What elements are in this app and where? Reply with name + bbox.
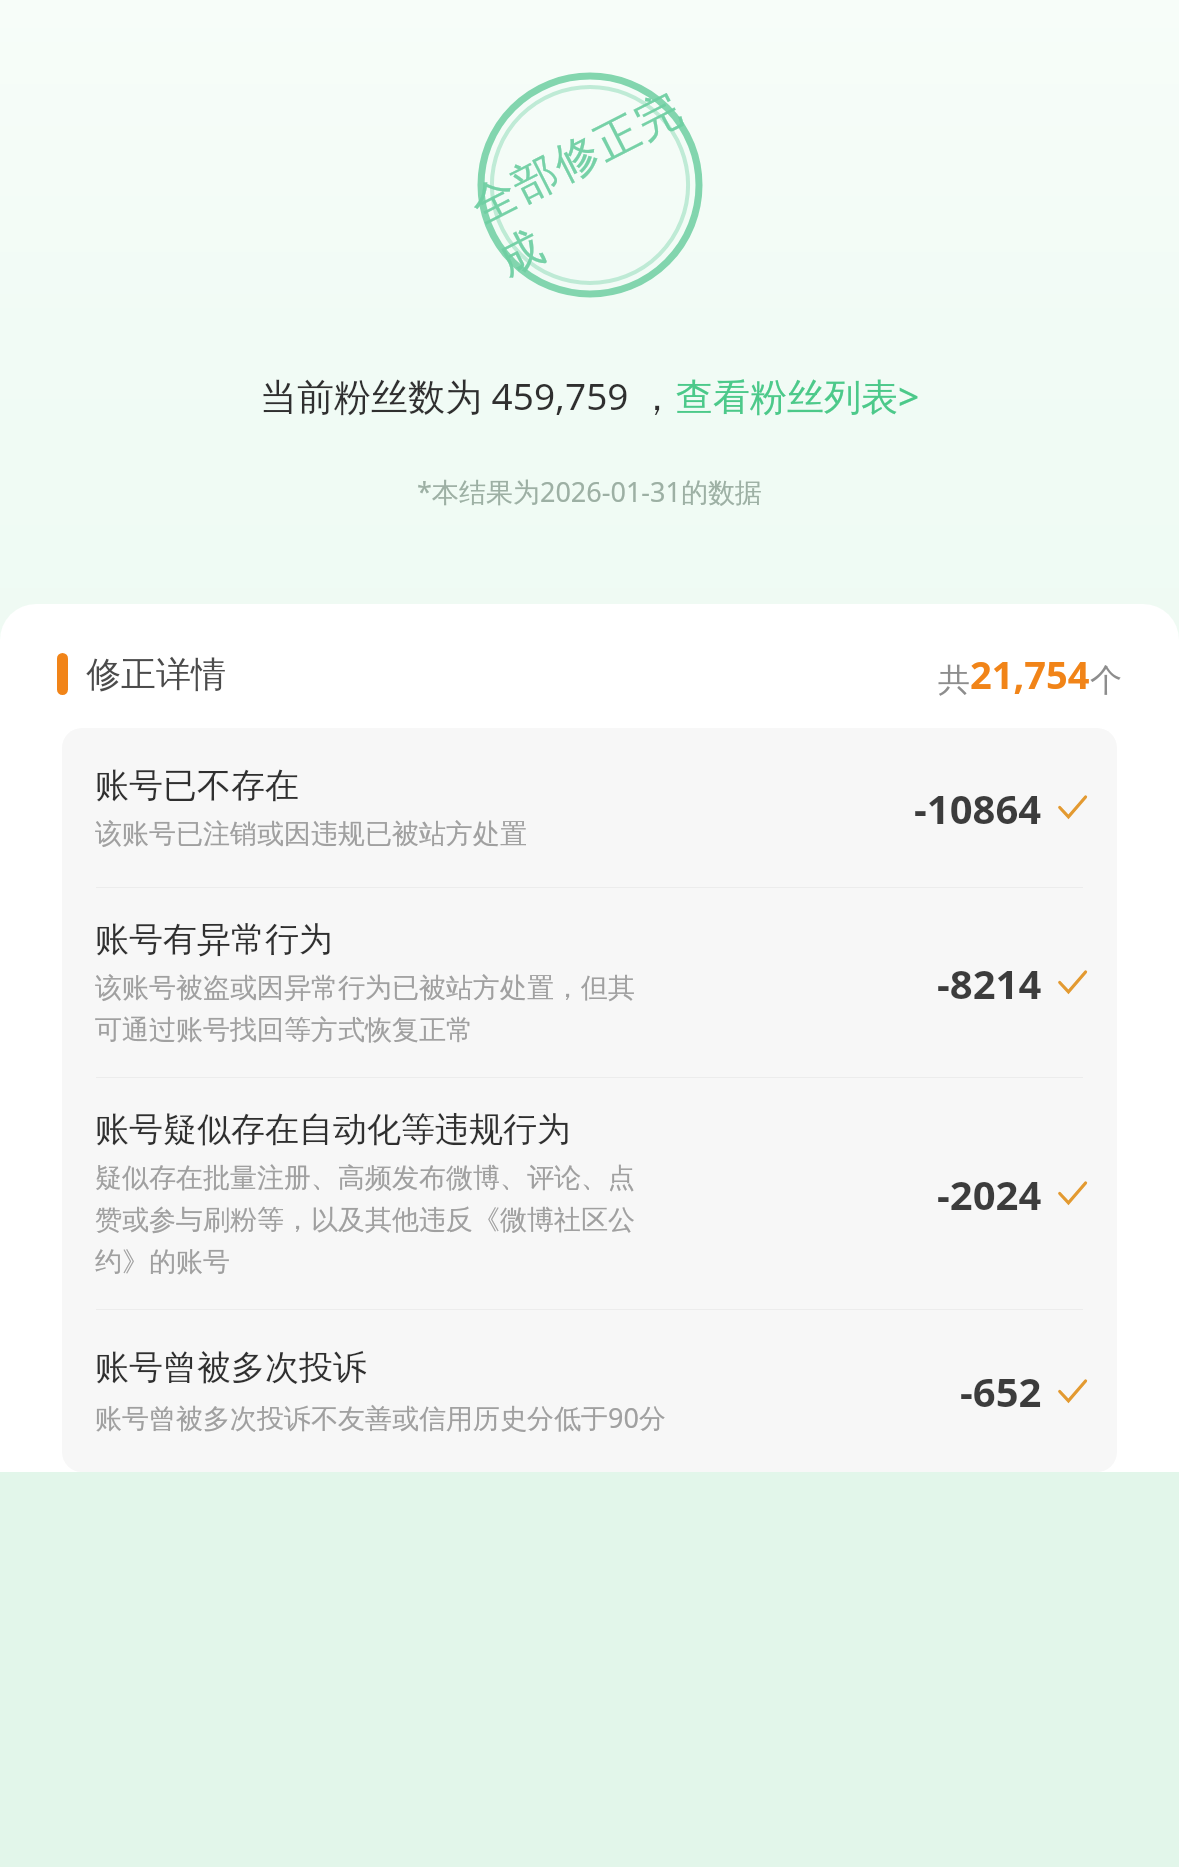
staticText: 当前粉丝数为 459,759 ， bbox=[260, 370, 676, 421]
staticText: -2024 bbox=[937, 1167, 1042, 1221]
staticText: 全部修正完成 bbox=[462, 82, 718, 288]
button[interactable]: 账号曾被多次投诉 bbox=[62, 1310, 1117, 1472]
staticText: 账号疑似存在自动化等违规行为 bbox=[95, 1108, 571, 1151]
staticText: 共 bbox=[938, 660, 970, 700]
staticText: 修正详情 bbox=[86, 652, 226, 696]
staticText: 该账号被盗或因异常行为已被站方处置，但其可通过账号找回等方式恢复正常 bbox=[95, 971, 655, 1047]
button[interactable]: 查看粉丝列表> bbox=[676, 370, 920, 421]
staticText: -652 bbox=[960, 1364, 1042, 1418]
staticText: -10864 bbox=[914, 781, 1042, 835]
other: Corrected bbox=[1058, 1377, 1087, 1406]
button[interactable]: 账号有异常行为 bbox=[62, 888, 1117, 1077]
staticText: 查看粉丝列表> bbox=[676, 370, 920, 421]
staticText: 账号已不存在 bbox=[95, 764, 299, 807]
staticText: -8214 bbox=[937, 956, 1042, 1010]
button[interactable]: 账号疑似存在自动化等违规行为 bbox=[62, 1078, 1117, 1309]
staticText: 疑似存在批量注册、高频发布微博、评论、点赞或参与刷粉等，以及其他违反《微博社区公… bbox=[95, 1161, 655, 1279]
other: Corrected bbox=[1058, 968, 1087, 997]
staticText: *本结果为2026-01-31的数据 bbox=[0, 473, 1179, 510]
other: Corrected bbox=[1058, 1179, 1087, 1208]
staticText: 账号曾被多次投诉 bbox=[95, 1346, 367, 1389]
button[interactable]: 账号已不存在 bbox=[62, 728, 1117, 887]
staticText: 21,754 bbox=[970, 648, 1090, 700]
staticText: 账号有异常行为 bbox=[95, 918, 333, 961]
other: Corrected bbox=[1058, 793, 1087, 822]
staticText: 账号曾被多次投诉不友善或信用历史分低于90分 bbox=[95, 1399, 666, 1436]
staticText: 该账号已注销或因违规已被站方处置 bbox=[95, 817, 527, 851]
staticText: 个 bbox=[1090, 660, 1122, 700]
